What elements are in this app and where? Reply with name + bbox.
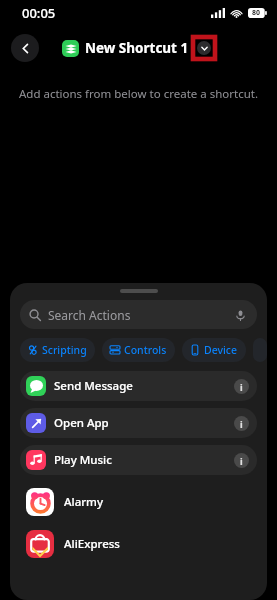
button[interactable] [253, 338, 267, 362]
staticText: AliExpress [64, 536, 120, 552]
staticText: Alarmy [64, 494, 104, 510]
staticText: i [240, 418, 243, 430]
button[interactable]: Info about Send Message [234, 379, 249, 394]
staticText: 80 [252, 8, 261, 18]
button[interactable]: Voice search [232, 307, 248, 323]
button[interactable]: Info about Play Music [234, 453, 249, 468]
staticText: 00:05 [22, 4, 56, 22]
button[interactable]: Open App [20, 408, 257, 438]
staticText: Scripting [42, 343, 87, 357]
staticText: i [240, 381, 243, 393]
staticText: i [240, 455, 243, 467]
staticText: Add actions from below to create a short… [18, 86, 259, 102]
button[interactable]: Controls [102, 338, 175, 362]
staticText: Controls [124, 343, 167, 357]
staticText: Device [204, 343, 238, 357]
staticText: New Shortcut 1 [85, 39, 189, 57]
button[interactable]: Scripting [20, 338, 95, 362]
button[interactable]: Device [182, 338, 246, 362]
staticText: Send Message [54, 378, 234, 394]
staticText: Search Actions [48, 307, 232, 323]
button[interactable]: Info about Open App [234, 416, 249, 431]
staticText: Play Music [54, 452, 234, 468]
button[interactable]: Search Actions [20, 300, 257, 329]
button[interactable]: Play Music [20, 445, 257, 475]
button[interactable]: Expand shortcut options [197, 41, 211, 55]
button[interactable]: Back [11, 34, 39, 62]
button[interactable]: Send Message [20, 371, 257, 401]
button[interactable]: AliExpress [10, 527, 267, 561]
staticText: Open App [54, 415, 234, 431]
button[interactable]: Alarmy [10, 485, 267, 519]
